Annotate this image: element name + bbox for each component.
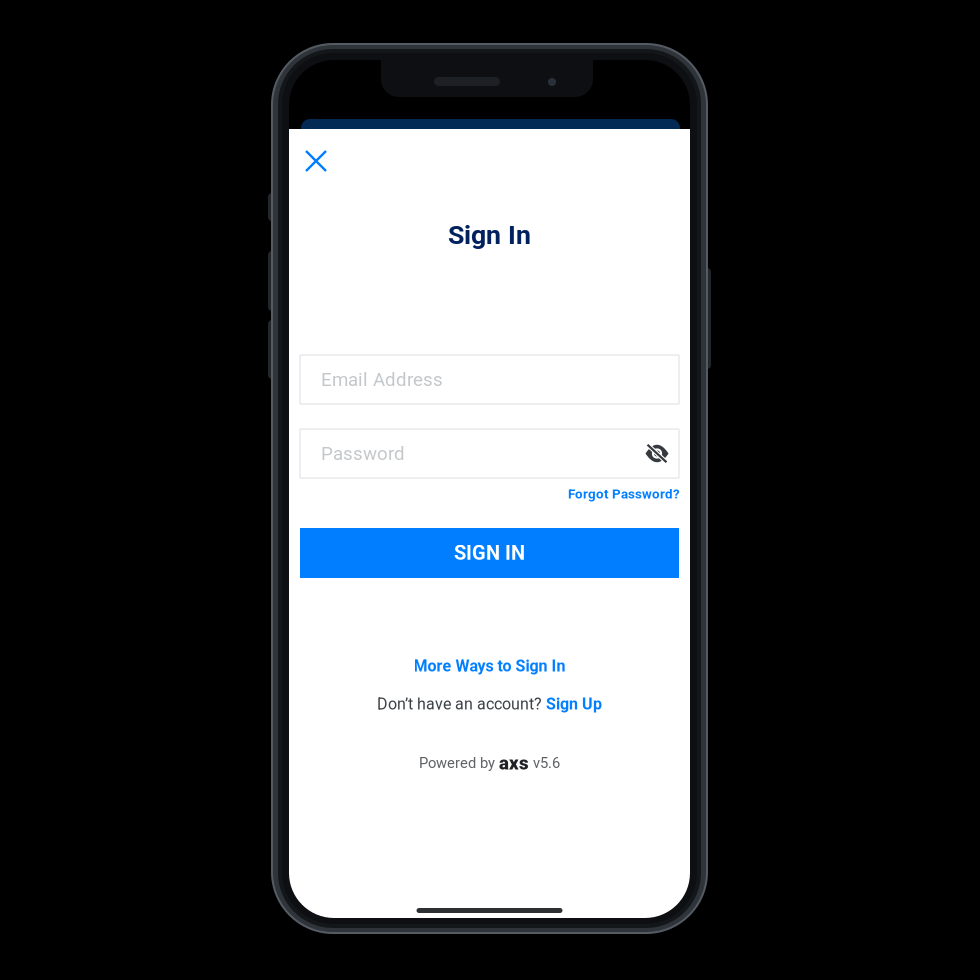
button[interactable]: SIGN IN xyxy=(300,528,679,578)
staticText: Email Address xyxy=(321,369,443,390)
staticText: Sign In xyxy=(448,219,531,251)
staticText: Don’t have an account? xyxy=(377,695,546,713)
staticText: Forgot Password? xyxy=(568,486,680,502)
button[interactable]: More Ways to Sign In xyxy=(289,656,690,676)
staticText: Password xyxy=(321,443,405,464)
button[interactable]: Sign Up xyxy=(546,695,602,713)
button[interactable]: Forgot Password? xyxy=(568,485,680,503)
staticText: Powered by xyxy=(419,754,499,772)
staticText: More Ways to Sign In xyxy=(413,657,565,675)
staticText: SIGN IN xyxy=(454,541,525,565)
staticText: axs xyxy=(499,752,529,774)
staticText: Sign Up xyxy=(546,695,602,713)
button[interactable]: Close xyxy=(296,141,336,181)
staticText: v5.6 xyxy=(529,754,560,772)
